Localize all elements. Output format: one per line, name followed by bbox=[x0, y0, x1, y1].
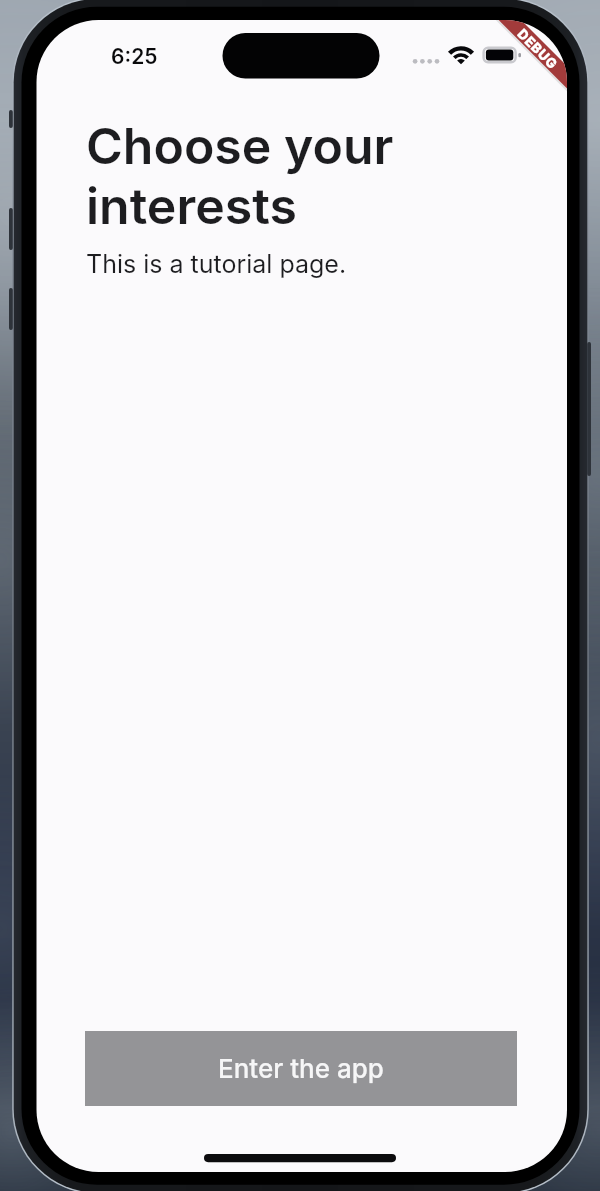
other: Debug banner bbox=[483, 36, 593, 62]
staticText: DEBUG bbox=[515, 26, 561, 72]
staticText: 6:25 bbox=[111, 44, 158, 69]
staticText: Choose your interests bbox=[86, 116, 486, 236]
staticText: This is a tutorial page. bbox=[86, 249, 347, 279]
staticText: Enter the app bbox=[218, 1053, 384, 1084]
button[interactable]: Enter the app bbox=[85, 1031, 517, 1106]
